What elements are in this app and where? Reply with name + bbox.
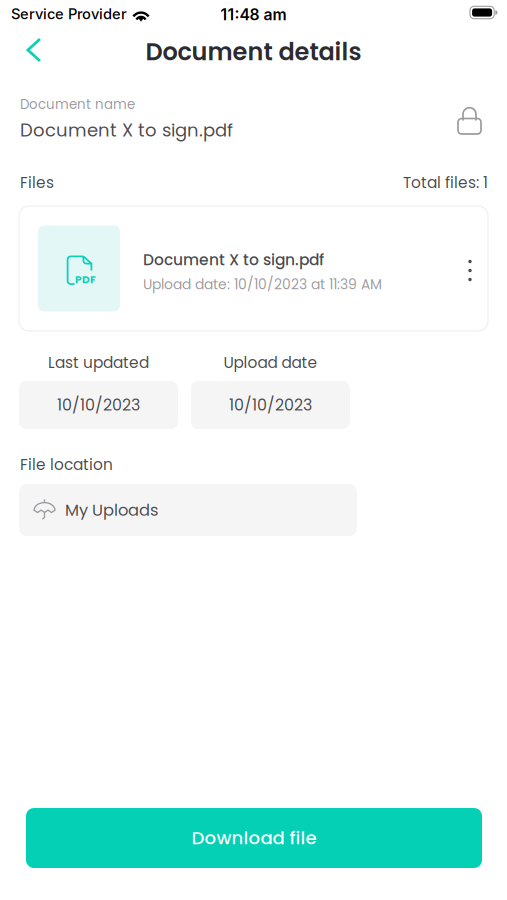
button[interactable]: My Uploads xyxy=(19,484,357,536)
button[interactable]: Locked xyxy=(458,107,481,134)
staticText: Upload date xyxy=(223,352,317,373)
button[interactable]: Download file xyxy=(26,808,482,868)
staticText: Upload date: 10/10/2023 at 11:39 AM xyxy=(143,275,382,294)
staticText: Document name xyxy=(20,95,135,114)
staticText: Document X to sign.pdf xyxy=(20,118,233,143)
staticText: Document X to sign.pdf xyxy=(143,249,324,271)
staticText: My Uploads xyxy=(65,499,158,521)
button[interactable]: 10/10/2023 xyxy=(19,381,178,429)
staticText: PDF xyxy=(75,272,96,287)
staticText: Download file xyxy=(191,825,316,851)
staticText: Service Provider xyxy=(11,5,127,23)
staticText: Document details xyxy=(145,35,361,69)
button[interactable]: 10/10/2023 xyxy=(191,381,350,429)
staticText: Total files: 1 xyxy=(403,172,488,193)
button[interactable]: PDF xyxy=(19,206,488,331)
staticText: 10/10/2023 xyxy=(229,394,312,416)
staticText: 11:48 am xyxy=(220,5,286,24)
staticText: 10/10/2023 xyxy=(57,394,140,416)
staticText: Last updated xyxy=(48,352,149,373)
button[interactable]: Back xyxy=(14,30,54,70)
staticText: File location xyxy=(20,454,113,475)
staticText: Files xyxy=(20,172,54,193)
